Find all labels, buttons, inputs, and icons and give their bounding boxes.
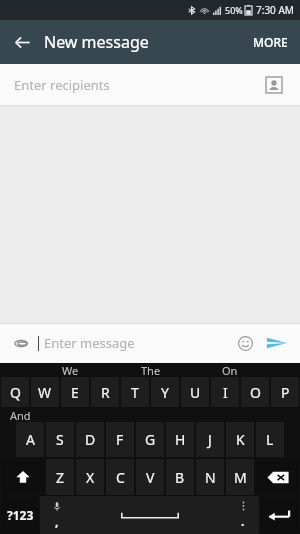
staticText: J	[208, 430, 212, 449]
staticText: ,	[55, 513, 59, 529]
staticText: F	[116, 430, 124, 449]
other: Shift	[15, 469, 31, 485]
button[interactable]: F	[106, 422, 134, 457]
button[interactable]: A	[16, 422, 44, 457]
button[interactable]: Pick contact	[262, 73, 286, 97]
staticText: R	[101, 383, 110, 402]
button[interactable]: Space	[73, 496, 226, 534]
button[interactable]: T	[121, 377, 149, 407]
button[interactable]: C	[106, 459, 134, 495]
staticText: I	[223, 383, 228, 402]
staticText: 50%	[225, 4, 243, 16]
button[interactable]: On	[222, 363, 238, 376]
button[interactable]: Back	[0, 20, 44, 64]
button[interactable]: K	[226, 422, 254, 457]
button[interactable]: Comma and voice input	[40, 496, 73, 534]
staticText: Enter recipients	[14, 76, 110, 94]
staticText: New message	[44, 31, 149, 53]
button[interactable]: Emoji	[232, 330, 258, 356]
staticText: 7:30 AM	[256, 3, 294, 17]
button[interactable]: D	[76, 422, 104, 457]
button[interactable]: U	[181, 377, 209, 407]
staticText: C	[116, 468, 125, 487]
button[interactable]: P	[271, 377, 299, 407]
staticText: On	[222, 363, 238, 376]
button[interactable]: O	[241, 377, 269, 407]
staticText: U	[190, 383, 201, 402]
button[interactable]: Q	[1, 377, 29, 407]
button[interactable]: MORE	[241, 22, 300, 62]
staticText: We	[62, 363, 79, 376]
staticText: D	[85, 430, 96, 449]
staticText: V	[146, 468, 155, 487]
button[interactable]: Attach	[8, 330, 34, 356]
button[interactable]: I	[211, 377, 239, 407]
staticText: E	[71, 383, 79, 402]
button[interactable]: Period and symbols	[226, 496, 259, 534]
button[interactable]: Y	[151, 377, 179, 407]
staticText: M	[234, 468, 247, 487]
button[interactable]: Z	[46, 459, 74, 495]
staticText: Y	[161, 383, 169, 402]
button[interactable]: ?123	[1, 497, 39, 533]
button[interactable]: N	[196, 459, 224, 495]
button[interactable]: R	[91, 377, 119, 407]
button[interactable]: E	[61, 377, 89, 407]
staticText: G	[145, 430, 156, 449]
staticText: L	[266, 430, 274, 449]
button[interactable]: Shift	[1, 459, 44, 495]
button[interactable]: H	[166, 422, 194, 457]
button[interactable]: Backspace	[256, 459, 299, 495]
other: Enter	[268, 508, 292, 522]
staticText: P	[281, 383, 290, 402]
button[interactable]: S	[46, 422, 74, 457]
staticText: Enter message	[44, 334, 232, 352]
button[interactable]: L	[256, 422, 284, 457]
button[interactable]: X	[76, 459, 104, 495]
button[interactable]: J	[196, 422, 224, 457]
staticText: N	[205, 468, 216, 487]
staticText: .	[241, 513, 245, 529]
staticText: A	[26, 430, 35, 449]
button[interactable]: V	[136, 459, 164, 495]
staticText: H	[175, 430, 186, 449]
staticText: Q	[10, 383, 21, 402]
button[interactable]: B	[166, 459, 194, 495]
button[interactable]: Enter	[260, 497, 299, 533]
button[interactable]: W	[31, 377, 59, 407]
staticText: MORE	[253, 34, 288, 50]
button[interactable]: We	[62, 363, 79, 376]
button[interactable]: G	[136, 422, 164, 457]
staticText: O	[250, 383, 261, 402]
staticText: K	[236, 430, 245, 449]
staticText: The	[141, 363, 161, 376]
staticText: ?123	[7, 507, 34, 523]
staticText: And	[10, 408, 31, 421]
button[interactable]: M	[226, 459, 254, 495]
staticText: B	[175, 468, 185, 487]
staticText: S	[56, 430, 64, 449]
staticText: X	[86, 468, 95, 487]
button[interactable]: And	[10, 408, 31, 421]
staticText: Z	[56, 468, 65, 487]
button[interactable]: The	[141, 363, 161, 376]
staticText: W	[38, 383, 52, 402]
staticText: T	[131, 383, 139, 402]
button[interactable]: Send	[262, 328, 292, 358]
other: Backspace	[267, 471, 289, 484]
